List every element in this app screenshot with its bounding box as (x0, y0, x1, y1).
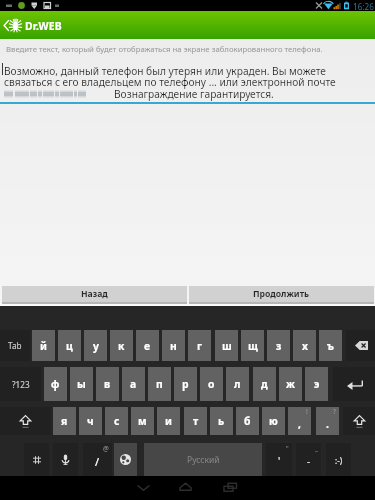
staticText: связаться с его владельцем по телефону .… (4, 75, 336, 89)
button[interactable]: ю (262, 407, 285, 435)
staticText: и (165, 414, 172, 428)
staticText: е (144, 339, 151, 353)
button[interactable]: Назад (2, 286, 187, 304)
button[interactable]: р (174, 367, 197, 401)
staticText: я (61, 414, 68, 428)
staticText: о (208, 377, 215, 391)
button[interactable]: п (148, 367, 171, 401)
button[interactable]: Back (0, 11, 375, 39)
button[interactable]: й (32, 330, 55, 361)
button[interactable]: щ (241, 330, 264, 361)
button[interactable]: с (105, 407, 128, 435)
button[interactable]: ц (58, 330, 81, 361)
staticText: 16:26 (353, 1, 374, 12)
staticText: ю (269, 414, 278, 428)
button[interactable]: т (184, 407, 207, 435)
button[interactable]: ! (288, 407, 311, 435)
button[interactable]: @ (83, 443, 112, 476)
button[interactable]: ж (279, 367, 302, 401)
staticText: Назад (81, 288, 108, 300)
staticText: у (93, 339, 99, 353)
staticText: б (244, 414, 251, 428)
button[interactable]: Shift (343, 407, 375, 435)
button[interactable]: Voice input (53, 443, 78, 476)
staticText: к (118, 339, 125, 353)
staticText: - (307, 454, 311, 468)
button[interactable]: Backspace (346, 330, 375, 361)
staticText: ' (278, 454, 281, 468)
button[interactable]: з (267, 330, 290, 361)
button[interactable]: ш (215, 330, 238, 361)
button[interactable]: :-) (326, 443, 351, 476)
button[interactable]: я (53, 407, 76, 435)
button[interactable]: а (122, 367, 145, 401)
staticText: Возможно, данный телефон был утерян или … (4, 64, 326, 78)
button[interactable]: ъ (319, 330, 342, 361)
staticText: " (286, 444, 289, 453)
staticText: _ (315, 444, 318, 453)
button[interactable]: Shift (0, 407, 51, 435)
button[interactable]: Tab (0, 330, 30, 361)
button[interactable]: ы (70, 367, 93, 401)
staticText: ь (218, 414, 225, 428)
staticText: ф (51, 377, 60, 391)
staticText: Tab (8, 340, 22, 351)
staticText: ж (286, 377, 295, 391)
staticText: л (234, 377, 241, 391)
staticText: г (197, 339, 202, 353)
button[interactable]: Русский (144, 443, 262, 476)
staticText: ! (306, 407, 308, 416)
staticText: ?123 (12, 379, 30, 390)
staticText: а (130, 377, 137, 391)
button[interactable]: ф (44, 367, 67, 401)
button[interactable]: л (226, 367, 249, 401)
button[interactable]: н (162, 330, 185, 361)
staticText: м (138, 414, 147, 428)
button[interactable]: ч (79, 407, 102, 435)
staticText: д (261, 377, 268, 391)
staticText: в (104, 377, 111, 391)
button[interactable]: Change language (114, 443, 137, 476)
button[interactable]: ?123 (0, 367, 41, 401)
button[interactable]: Продолжить (189, 286, 374, 304)
staticText: ъ (327, 339, 334, 353)
other: Back (3, 19, 9, 32)
staticText: п (156, 377, 163, 391)
button[interactable]: о (200, 367, 223, 401)
staticText: х (302, 339, 308, 353)
staticText: ы (77, 377, 86, 391)
button[interactable]: э (305, 367, 328, 401)
button[interactable]: " (266, 443, 292, 476)
staticText: , (298, 417, 301, 431)
button[interactable]: у (84, 330, 107, 361)
staticText: ? (333, 407, 336, 416)
button[interactable]: к (110, 330, 133, 361)
button[interactable]: в (96, 367, 119, 401)
button[interactable]: ? (316, 407, 339, 435)
staticText: ц (66, 339, 73, 353)
staticText: н (170, 339, 177, 353)
staticText: :-) (335, 455, 343, 466)
staticText: Dr.WEB (25, 19, 62, 33)
staticText: ш (222, 339, 232, 353)
staticText: @ (103, 444, 109, 453)
button[interactable]: Keyboard settings (24, 443, 49, 476)
staticText: Продолжить (253, 288, 310, 300)
staticText: с (114, 414, 120, 428)
button[interactable]: е (136, 330, 159, 361)
staticText: з (276, 339, 282, 353)
button[interactable]: и (157, 407, 180, 435)
button[interactable]: м (131, 407, 154, 435)
staticText: Вознаграждение гарантируется. (114, 87, 274, 101)
button[interactable]: х (293, 330, 316, 361)
button[interactable]: _ (296, 443, 321, 476)
button[interactable]: г (188, 330, 211, 361)
button[interactable]: Enter (333, 367, 375, 401)
button[interactable]: б (236, 407, 259, 435)
staticText: . (326, 417, 329, 431)
button[interactable]: д (253, 367, 276, 401)
staticText: Русский (187, 454, 220, 466)
staticText: ч (87, 414, 94, 428)
button[interactable]: ь (210, 407, 233, 435)
staticText: / (95, 454, 100, 469)
